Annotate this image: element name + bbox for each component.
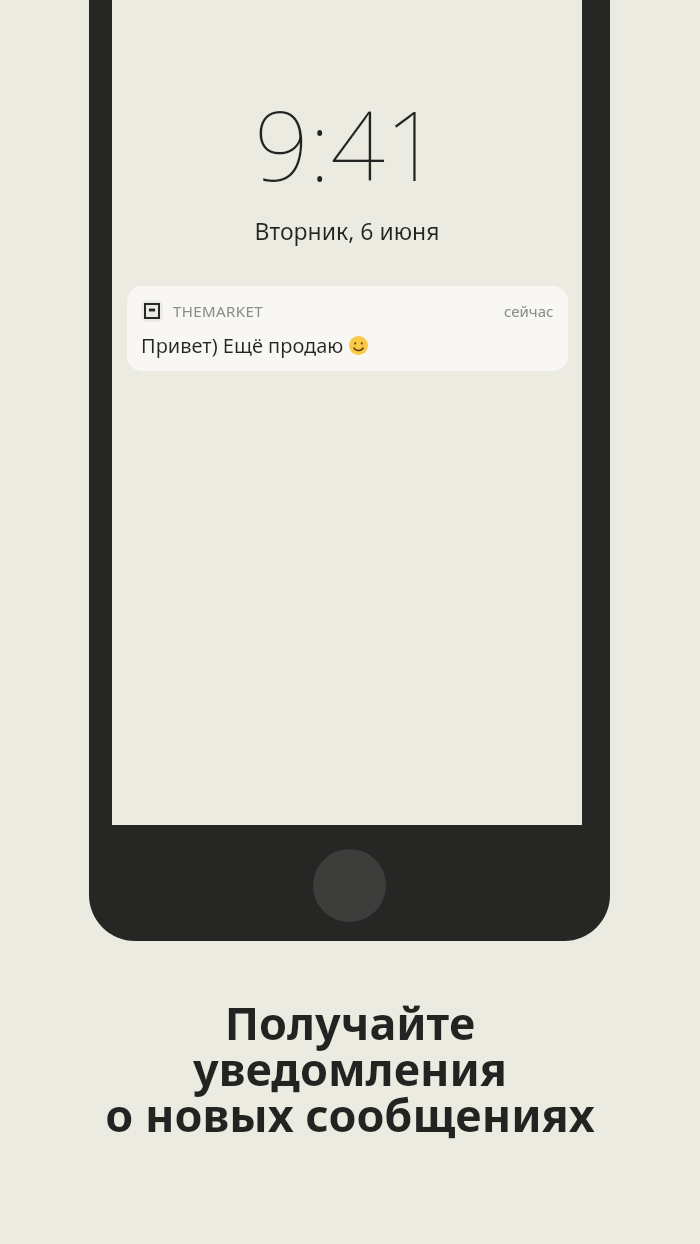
staticText: Привет) Ещё продаю (141, 332, 349, 359)
staticText: Получайте уведомления о новых сообщениях (105, 992, 595, 1145)
staticText: Вторник, 6 июня (254, 215, 440, 246)
button[interactable]: THEMARKET (127, 286, 568, 371)
button[interactable]: Home (313, 849, 386, 922)
staticText: 9:41 (254, 78, 440, 209)
staticText: сейчас (504, 301, 554, 321)
staticText: THEMARKET (173, 301, 263, 321)
